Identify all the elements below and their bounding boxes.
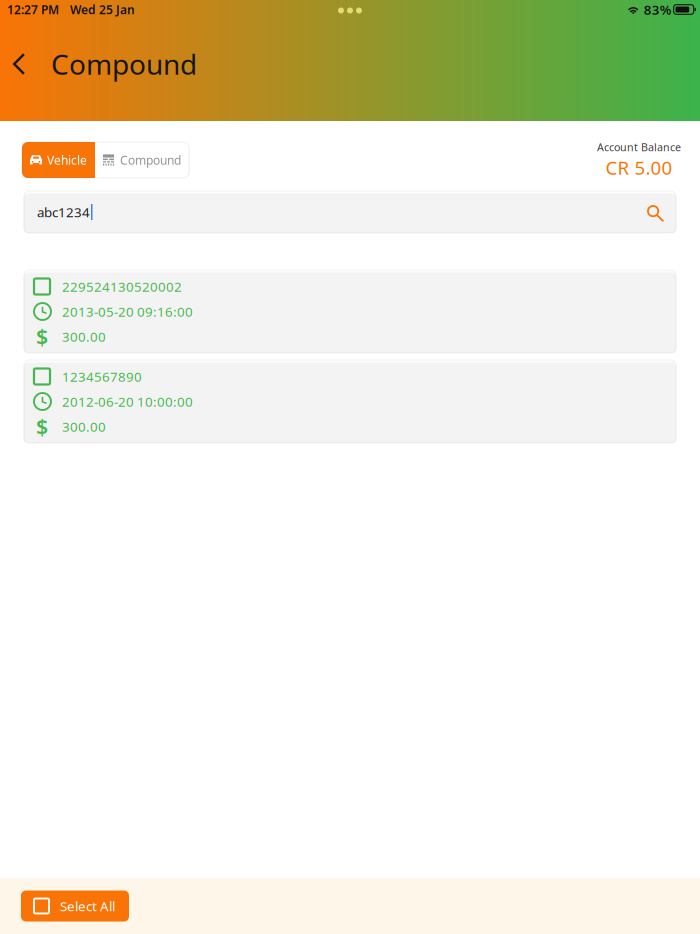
- staticText: CR 5.00: [605, 155, 672, 180]
- staticText: 229524130520002: [62, 278, 182, 295]
- button[interactable]: Back: [0, 42, 51, 86]
- staticText: Compound: [51, 45, 197, 83]
- button[interactable]: 229524130520002: [24, 270, 676, 353]
- staticText: $: [36, 322, 48, 351]
- button[interactable]: Select All: [21, 890, 129, 921]
- staticText: Compound: [120, 152, 181, 168]
- staticText: $: [36, 412, 48, 441]
- button[interactable]: Vehicle: [22, 142, 95, 178]
- staticText: Vehicle: [47, 152, 87, 168]
- staticText: abc1234: [37, 203, 90, 221]
- staticText: 300.00: [62, 418, 106, 435]
- staticText: 83%: [644, 1, 672, 18]
- staticText: Wed 25 Jan: [70, 1, 135, 17]
- staticText: 1234567890: [62, 368, 142, 385]
- button[interactable]: 1234567890: [24, 360, 676, 443]
- button[interactable]: Search: [638, 197, 668, 227]
- staticText: 300.00: [62, 328, 106, 345]
- staticText: 2012-06-20 10:00:00: [62, 393, 193, 410]
- staticText: Account Balance: [597, 140, 681, 154]
- staticText: 2013-05-20 09:16:00: [62, 303, 193, 320]
- staticText: 12:27 PM: [7, 1, 59, 17]
- staticText: Select All: [60, 897, 115, 915]
- button[interactable]: Compound: [95, 142, 189, 178]
